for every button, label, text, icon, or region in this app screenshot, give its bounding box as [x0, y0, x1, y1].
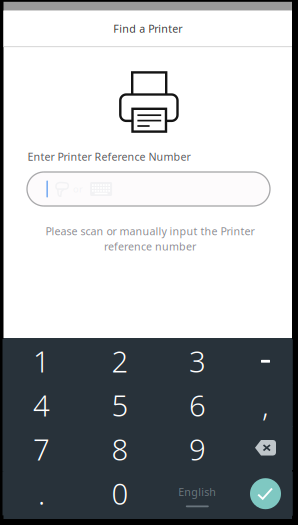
staticText: Please scan or manually input the Printe… [45, 224, 254, 238]
staticText: 2 [111, 341, 128, 380]
staticText: . [38, 474, 45, 513]
staticText: 9 [189, 429, 206, 468]
button[interactable]: Find a Printer [3, 11, 292, 47]
staticText: 3 [189, 341, 206, 380]
staticText: 8 [111, 429, 128, 468]
staticText: English [178, 485, 216, 499]
staticText: 5 [111, 385, 128, 424]
staticText: Enter Printer Reference Number [27, 149, 190, 164]
staticText: 0 [111, 474, 128, 513]
staticText: 1 [33, 341, 50, 380]
button[interactable]: 7 [2, 427, 80, 471]
staticText: 4 [33, 385, 50, 424]
staticText: 7 [33, 429, 50, 468]
staticText: 6 [189, 385, 206, 424]
button[interactable]: Printer reference number field [27, 172, 270, 206]
button[interactable]: 4 [2, 383, 80, 427]
button[interactable]: Language English [158, 474, 236, 518]
staticText: Find a Printer [113, 21, 182, 36]
button[interactable]: 0 [81, 471, 159, 515]
button[interactable]: Confirm [238, 472, 293, 516]
button[interactable]: Delete [238, 426, 293, 470]
button[interactable]: 3 [158, 339, 236, 383]
staticText: , [262, 385, 269, 424]
button[interactable]: 6 [158, 383, 236, 427]
button[interactable]: 1 [2, 339, 80, 383]
button[interactable]: , [238, 383, 293, 427]
button[interactable]: 5 [81, 383, 159, 427]
button[interactable]: . [2, 471, 80, 515]
button[interactable]: Hyphen [238, 339, 293, 383]
button[interactable]: 9 [158, 427, 236, 471]
button[interactable]: 8 [81, 427, 159, 471]
button[interactable]: 2 [81, 339, 159, 383]
staticText: reference number [104, 239, 196, 253]
